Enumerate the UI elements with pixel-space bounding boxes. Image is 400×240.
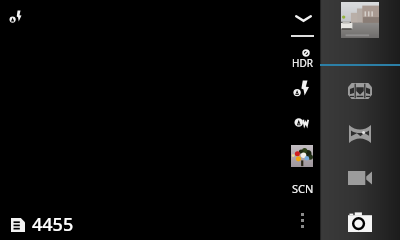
staticText: 4455 bbox=[32, 212, 74, 237]
button[interactable]: Photo Sphere bbox=[338, 74, 382, 108]
button[interactable]: Scene mode bbox=[291, 145, 313, 167]
button[interactable]: Hide settings bbox=[290, 8, 316, 28]
staticText: HDR bbox=[292, 56, 313, 70]
staticText: SCN bbox=[292, 181, 314, 196]
button[interactable]: Flash off bbox=[293, 79, 313, 97]
button[interactable]: More options bbox=[292, 206, 312, 234]
button[interactable]: Panorama bbox=[338, 117, 382, 151]
button[interactable]: HDR off bbox=[287, 45, 319, 69]
button[interactable]: Video camera bbox=[338, 161, 382, 195]
button[interactable]: SCN bbox=[288, 180, 318, 196]
button[interactable]: Auto white balance bbox=[293, 115, 313, 130]
button[interactable]: 4455 bbox=[11, 212, 74, 237]
button[interactable]: Open gallery bbox=[341, 2, 379, 38]
button[interactable]: Auto flash bbox=[6, 6, 28, 28]
button[interactable]: Camera bbox=[338, 205, 382, 239]
